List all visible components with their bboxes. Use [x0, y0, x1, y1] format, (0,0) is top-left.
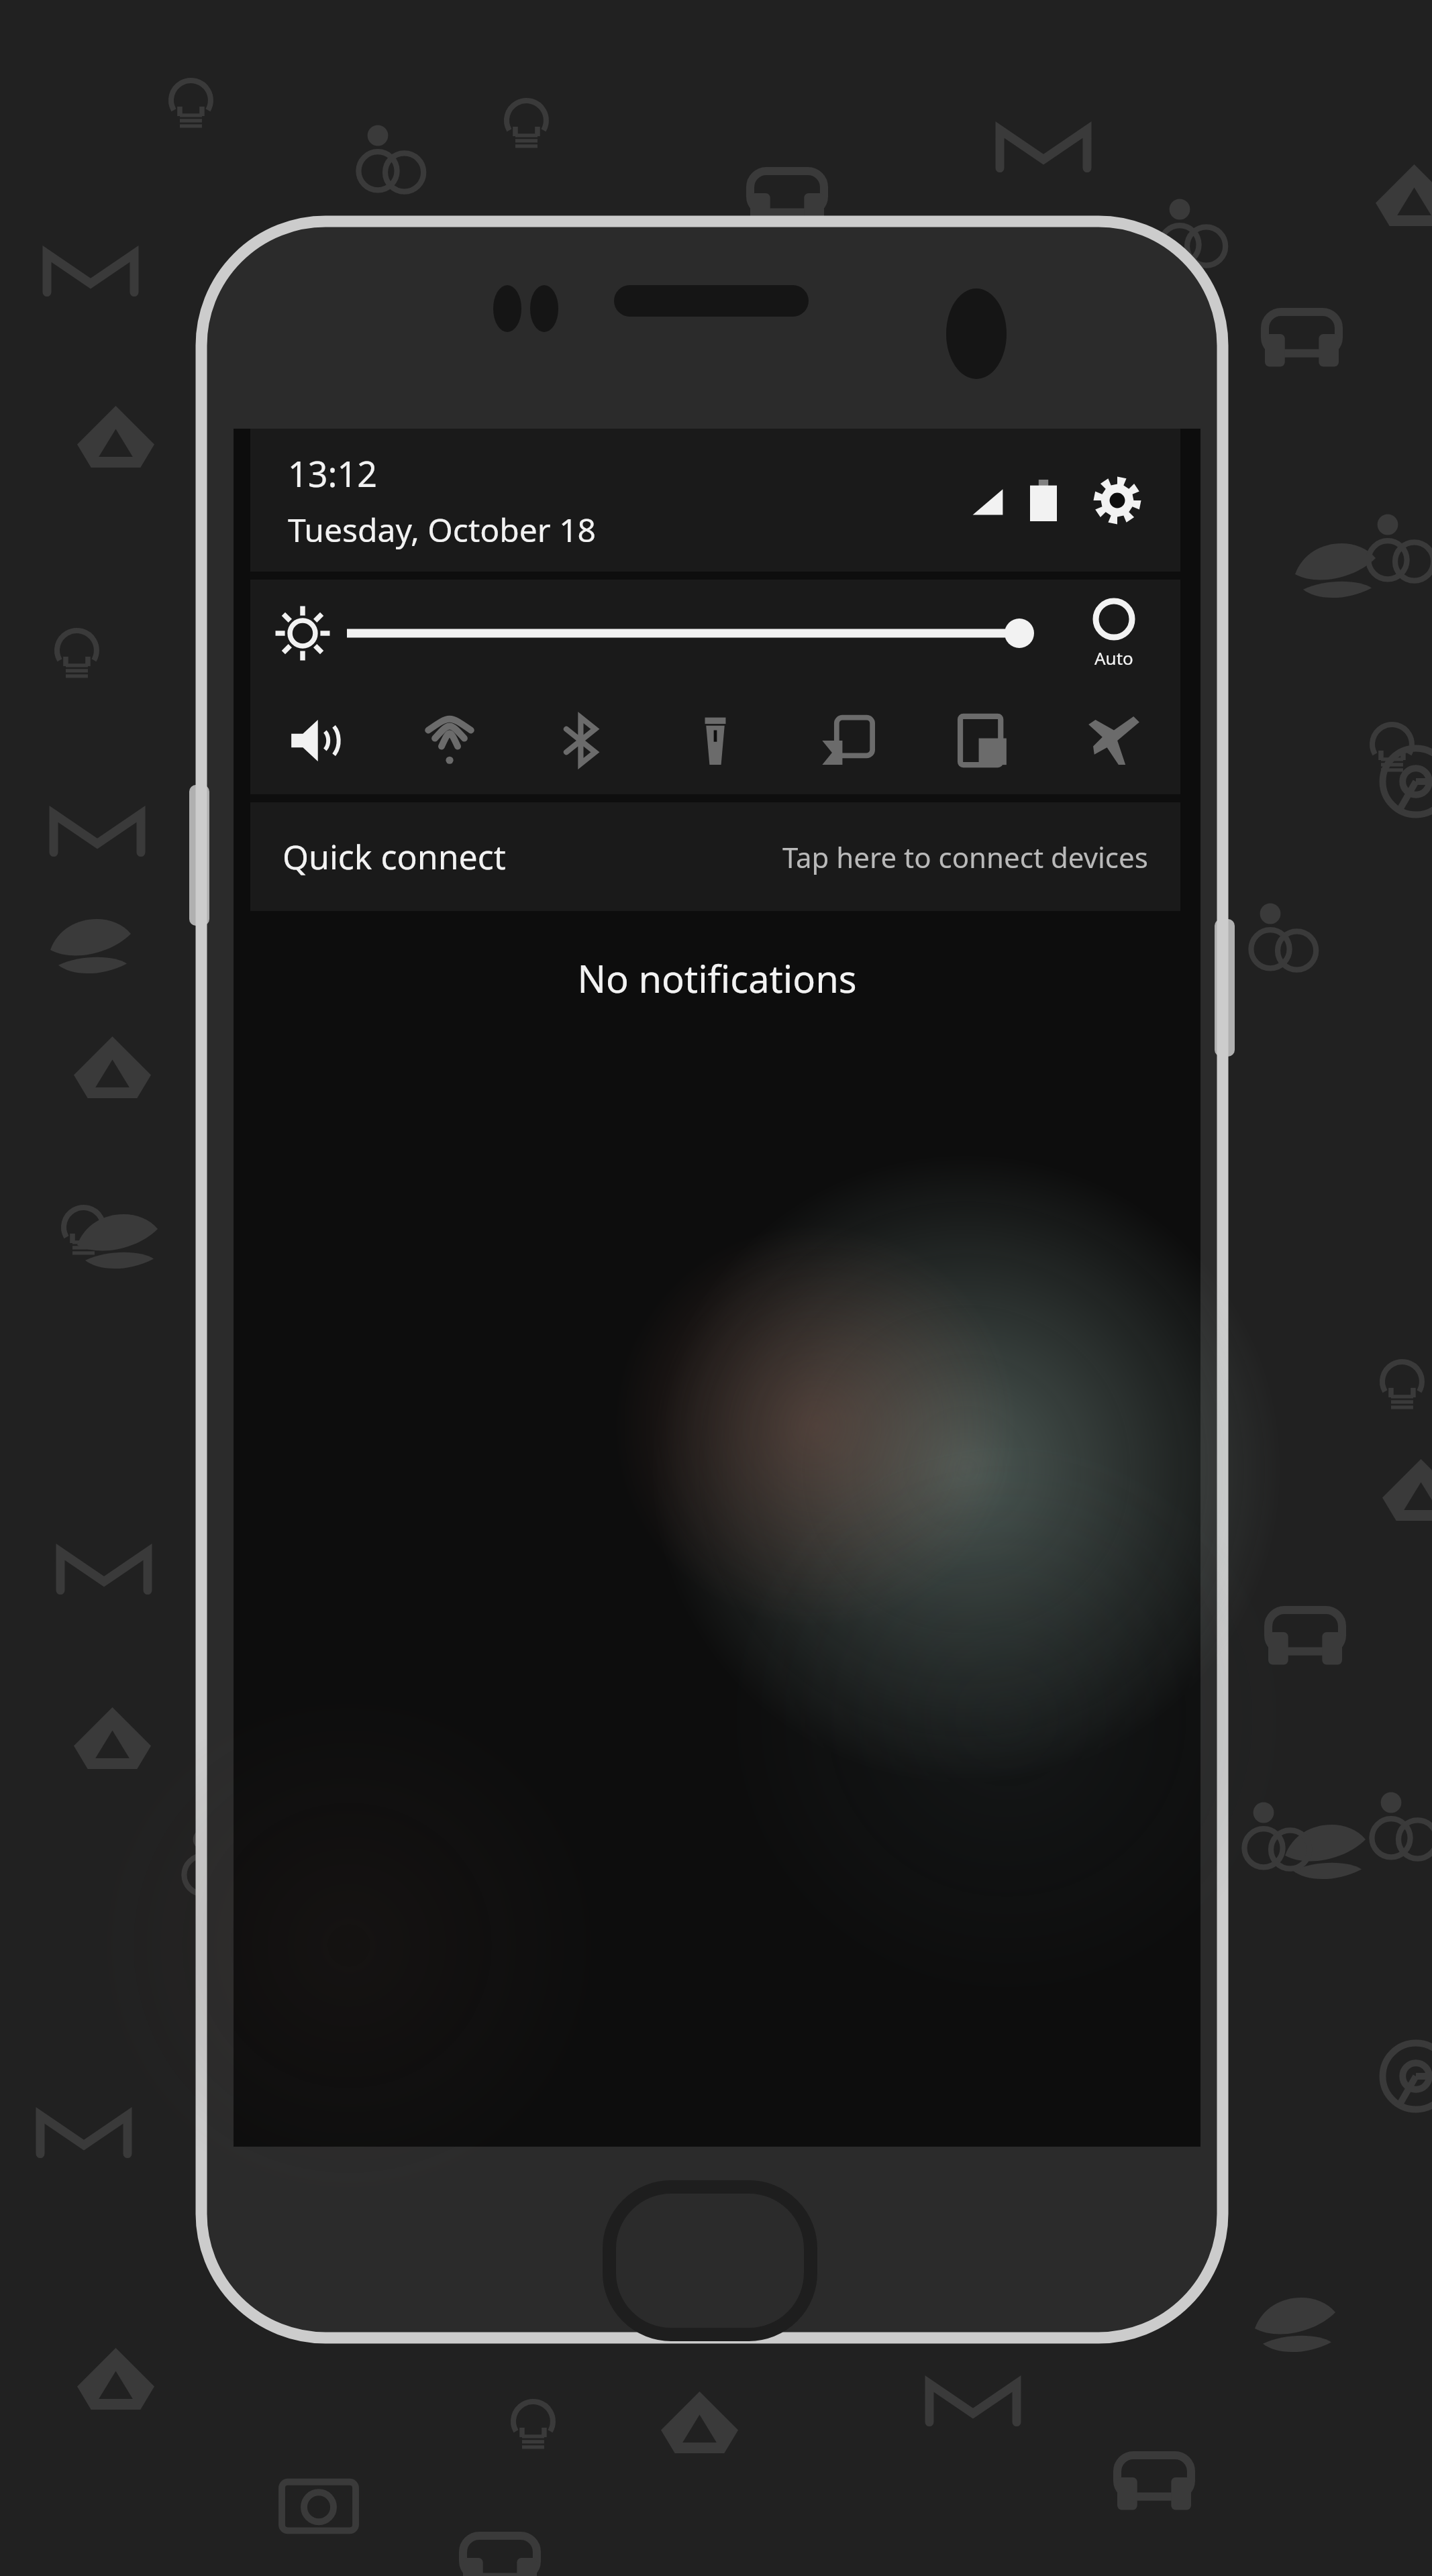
button[interactable]: Screen mirroring — [782, 687, 915, 794]
button[interactable]: Quick connect — [250, 802, 1180, 911]
staticText: Quick connect — [283, 834, 506, 879]
button[interactable]: Wi-Fi — [383, 687, 516, 794]
staticText: No notifications — [234, 953, 1200, 1004]
staticText: Auto — [1094, 646, 1133, 669]
staticText: Tuesday, October 18 — [288, 508, 597, 551]
staticText: Tap here to connect devices — [782, 838, 1148, 876]
staticText: 13:12 — [288, 449, 377, 497]
button[interactable]: Multi window — [915, 687, 1047, 794]
button[interactable]: Airplane mode — [1047, 687, 1180, 794]
button[interactable]: Bluetooth — [516, 687, 649, 794]
button[interactable]: Auto — [1064, 598, 1164, 669]
button[interactable]: 13:12 — [250, 429, 1180, 572]
button[interactable]: Flashlight — [649, 687, 782, 794]
button[interactable]: Sound — [250, 687, 383, 794]
button[interactable]: Auto — [250, 580, 1180, 687]
button[interactable]: Settings — [1086, 470, 1148, 531]
